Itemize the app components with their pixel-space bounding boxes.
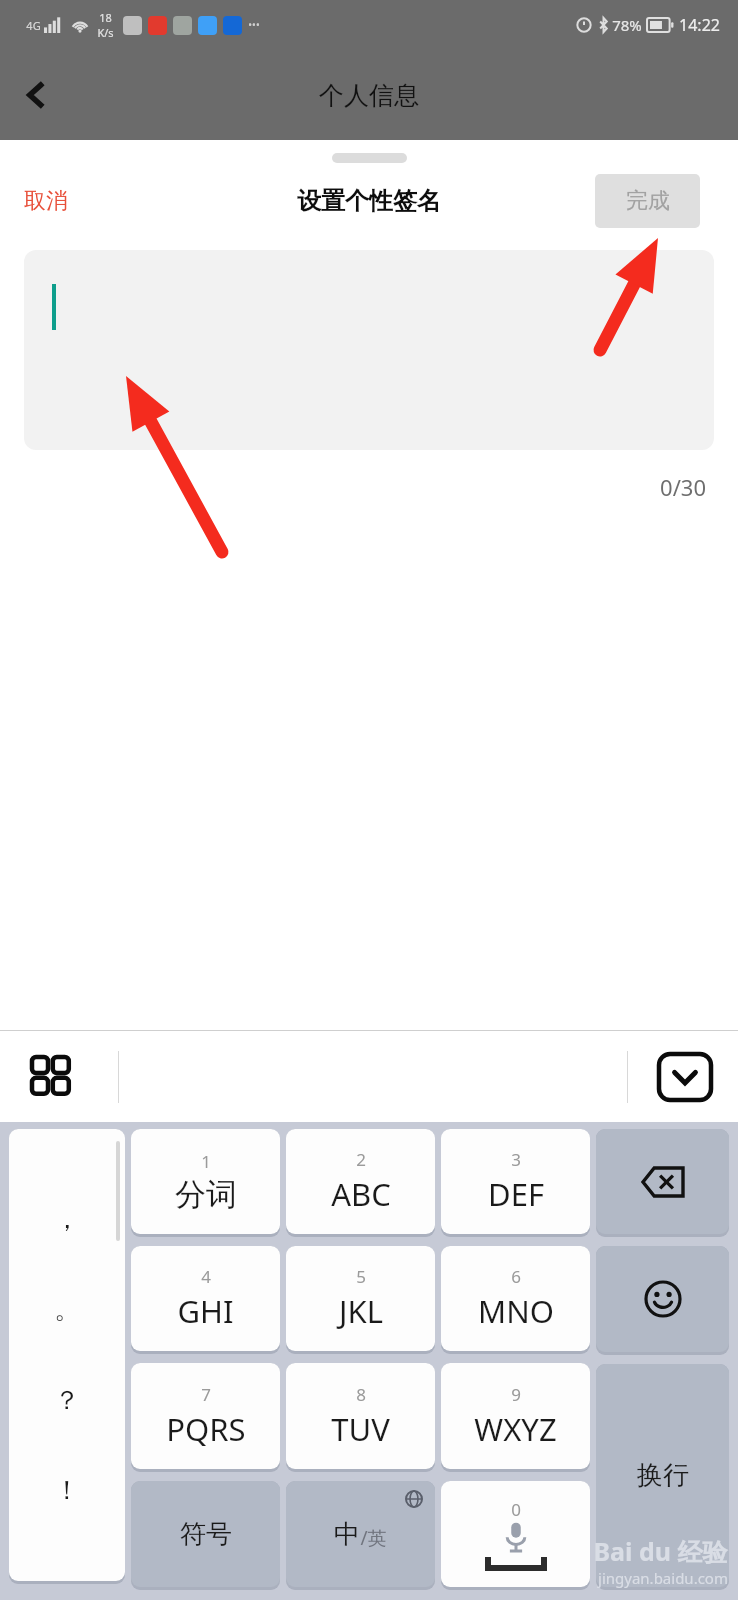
- staticText: 个人信息: [319, 80, 419, 111]
- staticText: 8: [356, 1383, 366, 1406]
- staticText: 4G: [26, 18, 41, 33]
- staticText: TUV: [331, 1408, 390, 1450]
- staticText: JKL: [339, 1290, 383, 1332]
- staticText: GHI: [177, 1290, 234, 1332]
- staticText: PQRS: [166, 1408, 246, 1450]
- button[interactable]: 6: [441, 1246, 590, 1351]
- button[interactable]: 完成: [595, 174, 700, 228]
- staticText: 78%: [612, 15, 642, 35]
- staticText: ？: [54, 1384, 80, 1417]
- staticText: MNO: [478, 1290, 554, 1332]
- staticText: 1: [201, 1150, 211, 1173]
- staticText: 18: [99, 10, 112, 25]
- staticText: 7: [201, 1383, 211, 1406]
- button[interactable]: 1: [131, 1129, 280, 1234]
- staticText: 换行: [637, 1459, 689, 1492]
- staticText: 2: [356, 1148, 366, 1171]
- staticText: 符号: [180, 1518, 232, 1551]
- staticText: K/s: [97, 25, 114, 40]
- staticText: jingyan.baidu.com: [598, 1568, 728, 1588]
- staticText: ！: [54, 1474, 80, 1507]
- staticText: 设置个性签名: [297, 186, 441, 216]
- button[interactable]: 7: [131, 1363, 280, 1469]
- button[interactable]: Emoji: [596, 1246, 729, 1352]
- staticText: 6: [511, 1265, 521, 1288]
- button[interactable]: 符号: [131, 1481, 280, 1587]
- staticText: 中: [334, 1518, 360, 1551]
- button[interactable]: 4: [131, 1246, 280, 1351]
- staticText: 4: [201, 1265, 211, 1288]
- button[interactable]: ，: [9, 1129, 125, 1581]
- button[interactable]: Voice input: [441, 1481, 590, 1587]
- button[interactable]: Keyboard layouts: [22, 1047, 82, 1107]
- staticText: 分词: [175, 1175, 237, 1214]
- button[interactable]: 取消: [12, 177, 80, 225]
- button[interactable]: Hide keyboard: [652, 1049, 718, 1105]
- button[interactable]: 中: [286, 1481, 435, 1587]
- staticText: /英: [360, 1525, 387, 1551]
- staticText: 14:22: [679, 14, 720, 36]
- staticText: Bai du 经验: [593, 1534, 728, 1568]
- staticText: 9: [511, 1383, 521, 1406]
- staticText: ，: [54, 1203, 80, 1236]
- staticText: 3: [511, 1148, 521, 1171]
- button[interactable]: [24, 250, 714, 450]
- button[interactable]: 9: [441, 1363, 590, 1469]
- staticText: ABC: [331, 1173, 391, 1215]
- staticText: DEF: [488, 1173, 544, 1215]
- staticText: 完成: [626, 187, 670, 215]
- staticText: 。: [54, 1293, 80, 1326]
- button[interactable]: 5: [286, 1246, 435, 1351]
- button[interactable]: 换行: [596, 1364, 729, 1587]
- staticText: 0: [511, 1498, 521, 1521]
- button[interactable]: Backspace: [596, 1129, 729, 1234]
- button[interactable]: 8: [286, 1363, 435, 1469]
- button[interactable]: 3: [441, 1129, 590, 1234]
- button[interactable]: Back: [8, 67, 64, 123]
- staticText: WXYZ: [474, 1408, 557, 1450]
- button[interactable]: 2: [286, 1129, 435, 1234]
- staticText: 5: [356, 1265, 366, 1288]
- staticText: 0/30: [0, 472, 706, 502]
- staticText: •••: [248, 18, 260, 32]
